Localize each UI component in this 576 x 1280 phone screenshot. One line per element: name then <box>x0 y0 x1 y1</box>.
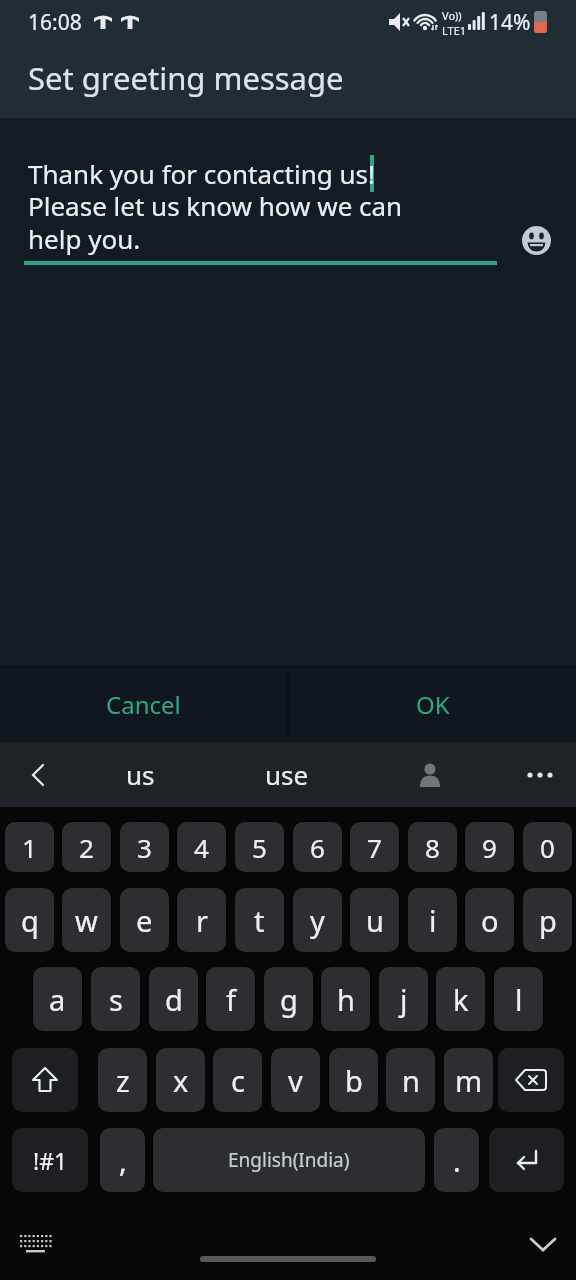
staticText: ! <box>368 156 375 191</box>
staticText: English(India) <box>228 1147 350 1173</box>
button[interactable] <box>12 1048 78 1112</box>
staticText: 1 <box>22 830 37 865</box>
button[interactable] <box>518 1224 568 1264</box>
staticText: h <box>337 980 355 1019</box>
staticText: , <box>119 1141 127 1180</box>
staticText: us <box>126 757 155 792</box>
staticText: k <box>453 980 469 1019</box>
button[interactable]: , <box>100 1128 145 1192</box>
button[interactable]: c <box>213 1048 262 1112</box>
staticText: 4 <box>194 830 209 865</box>
button[interactable]: 4 <box>177 822 226 872</box>
staticText: e <box>136 901 153 940</box>
staticText: 9 <box>482 830 497 865</box>
button[interactable]: OK <box>289 667 576 742</box>
button[interactable]: 0 <box>523 822 572 872</box>
button[interactable]: use <box>239 742 335 807</box>
button[interactable]: 9 <box>465 822 514 872</box>
staticText: l <box>515 980 523 1019</box>
staticText: 8 <box>425 830 440 865</box>
button[interactable]: m <box>444 1048 493 1112</box>
staticText: Please let us know how we can help you. <box>28 188 403 257</box>
staticText: . <box>453 1141 461 1180</box>
staticText: Thank you for contacting us <box>28 156 368 191</box>
staticText: 14% <box>489 8 531 36</box>
staticText: Vo)) <box>442 8 462 23</box>
staticText: t <box>254 901 265 940</box>
staticText: 5 <box>252 830 267 865</box>
staticText: p <box>539 901 557 940</box>
button[interactable]: 7 <box>350 822 399 872</box>
button[interactable]: 3 <box>120 822 169 872</box>
staticText: 6 <box>310 830 325 865</box>
staticText: 3 <box>137 830 152 865</box>
button[interactable]: o <box>465 888 514 952</box>
button[interactable]: 2 <box>62 822 111 872</box>
button[interactable] <box>489 1128 564 1192</box>
staticText: 2 <box>79 830 94 865</box>
staticText: i <box>429 901 437 940</box>
button[interactable]: 8 <box>408 822 457 872</box>
button[interactable]: 5 <box>235 822 284 872</box>
staticText: m <box>455 1061 483 1100</box>
staticText: g <box>280 980 298 1019</box>
button[interactable]: l <box>494 967 543 1031</box>
staticText: q <box>21 901 39 940</box>
button[interactable]: 1 <box>5 822 54 872</box>
staticText: Cancel <box>106 688 181 721</box>
button[interactable]: i <box>408 888 457 952</box>
button[interactable]: s <box>91 967 140 1031</box>
button[interactable]: . <box>434 1128 479 1192</box>
staticText: s <box>109 980 123 1019</box>
staticText: x <box>173 1061 189 1100</box>
button[interactable]: Cancel <box>0 667 287 742</box>
button[interactable]: q <box>5 888 54 952</box>
staticText: b <box>345 1061 363 1100</box>
button[interactable]: 6 <box>293 822 342 872</box>
button[interactable] <box>521 225 552 256</box>
button[interactable] <box>10 1226 62 1262</box>
staticText: 16:08 <box>28 8 82 36</box>
button[interactable]: u <box>350 888 399 952</box>
staticText: f <box>226 980 236 1019</box>
button[interactable] <box>498 1048 564 1112</box>
staticText: 0 <box>540 830 555 865</box>
staticText: d <box>165 980 183 1019</box>
staticText: w <box>75 901 98 940</box>
staticText: Set greeting message <box>28 57 344 99</box>
button[interactable]: y <box>293 888 342 952</box>
staticText: use <box>265 757 309 792</box>
button[interactable]: d <box>149 967 198 1031</box>
button[interactable]: English(India) <box>153 1128 425 1192</box>
button[interactable]: r <box>177 888 226 952</box>
button[interactable]: v <box>271 1048 320 1112</box>
button[interactable]: w <box>62 888 111 952</box>
button[interactable]: t <box>235 888 284 952</box>
staticText: LTE1 <box>442 23 467 38</box>
staticText: y <box>310 901 325 940</box>
button[interactable]: x <box>156 1048 205 1112</box>
staticText: a <box>49 980 66 1019</box>
staticText: OK <box>416 688 450 721</box>
button[interactable]: b <box>329 1048 378 1112</box>
button[interactable]: e <box>120 888 169 952</box>
button[interactable]: z <box>98 1048 147 1112</box>
button[interactable]: k <box>436 967 485 1031</box>
button[interactable]: n <box>386 1048 435 1112</box>
button[interactable] <box>406 742 454 807</box>
button[interactable]: g <box>264 967 313 1031</box>
button[interactable]: j <box>379 967 428 1031</box>
button[interactable] <box>516 742 564 807</box>
staticText: j <box>400 980 408 1019</box>
button[interactable]: !#1 <box>12 1128 88 1192</box>
staticText: r <box>196 901 208 940</box>
button[interactable]: us <box>92 742 188 807</box>
button[interactable]: f <box>206 967 255 1031</box>
staticText: 7 <box>367 830 382 865</box>
button[interactable]: p <box>523 888 572 952</box>
button[interactable]: a <box>33 967 82 1031</box>
button[interactable]: h <box>321 967 370 1031</box>
button[interactable] <box>14 742 62 807</box>
staticText: z <box>116 1061 130 1100</box>
staticText: v <box>288 1061 303 1100</box>
